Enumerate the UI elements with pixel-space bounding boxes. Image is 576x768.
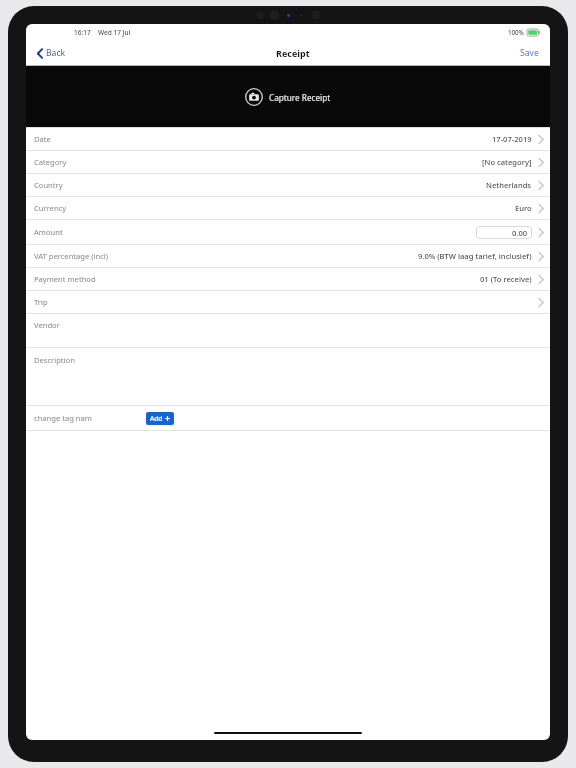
- staticText: Description: [34, 355, 75, 365]
- button[interactable]: Vendor: [26, 314, 550, 348]
- staticText: 9.0% (BTW laag tarief, inclusief): [418, 251, 532, 261]
- staticText: change tag nam: [34, 413, 92, 423]
- staticText: 17-07-2019: [492, 134, 532, 144]
- staticText: Wed 17 Jul: [98, 28, 131, 37]
- staticText: Category: [34, 157, 67, 167]
- button[interactable]: Payment method: [26, 268, 550, 291]
- button[interactable]: Country: [26, 174, 550, 197]
- staticText: Back: [46, 47, 66, 59]
- staticText: Add: [150, 414, 163, 423]
- button[interactable]: Save: [518, 44, 541, 62]
- button[interactable]: Currency: [26, 197, 550, 220]
- staticText: Euro: [515, 203, 532, 213]
- staticText: 01 (To receive): [480, 274, 532, 284]
- staticText: Country: [34, 180, 63, 190]
- button[interactable]: VAT percentage (incl): [26, 245, 550, 268]
- staticText: Save: [520, 47, 539, 59]
- staticText: 16:17: [74, 28, 91, 37]
- staticText: 100%: [508, 28, 524, 36]
- button[interactable]: Add: [146, 412, 174, 425]
- staticText: Vendor: [34, 320, 60, 330]
- staticText: Amount: [34, 227, 63, 237]
- staticText: [No category]: [482, 157, 532, 167]
- staticText: VAT percentage (incl): [34, 251, 109, 261]
- staticText: 0.00: [512, 228, 528, 238]
- button[interactable]: Description: [26, 348, 550, 406]
- staticText: Payment method: [34, 274, 96, 284]
- button[interactable]: Trip: [26, 291, 550, 314]
- staticText: Currency: [34, 203, 67, 213]
- button[interactable]: Amount: [26, 220, 550, 245]
- staticText: Trip: [34, 297, 48, 307]
- button[interactable]: Date: [26, 128, 550, 151]
- staticText: Capture Receipt: [269, 92, 331, 103]
- staticText: Netherlands: [486, 180, 532, 190]
- button[interactable]: Back: [35, 44, 68, 62]
- button[interactable]: Capture Receipt: [239, 84, 337, 110]
- staticText: Date: [34, 134, 51, 144]
- staticText: Receipt: [276, 47, 310, 59]
- button[interactable]: Category: [26, 151, 550, 174]
